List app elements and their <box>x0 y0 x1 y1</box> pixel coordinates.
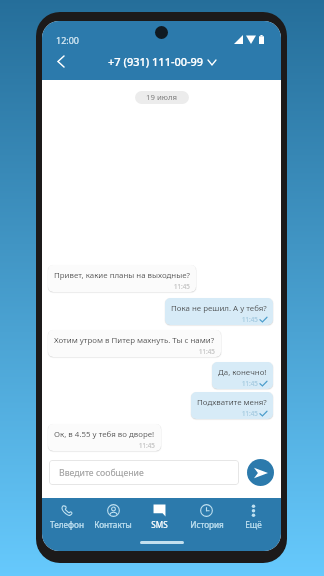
staticText: SMS <box>151 519 168 530</box>
button[interactable]: Send <box>247 459 274 486</box>
staticText: Контакты <box>94 519 132 530</box>
button[interactable]: Ок, в 4.55 у тебя во дворе! <box>48 424 161 451</box>
button[interactable]: 19 июля <box>135 91 189 104</box>
staticText: Ок, в 4.55 у тебя во дворе! <box>54 429 155 440</box>
button[interactable]: SMS <box>136 503 183 531</box>
staticText: Телефон <box>50 519 84 530</box>
button[interactable]: Да, конечно! <box>212 362 273 389</box>
button[interactable]: Хотим утром в Питер махнуть. Ты с нами? <box>48 330 221 357</box>
staticText: Да, конечно! <box>218 367 267 378</box>
button[interactable]: Контакты <box>90 503 136 531</box>
staticText: 19 июля <box>146 92 178 103</box>
staticText: История <box>190 519 224 530</box>
staticText: Хотим утром в Питер махнуть. Ты с нами? <box>54 335 215 346</box>
staticText: 11:45 <box>174 282 190 290</box>
button[interactable]: +7 (931) 111-00-99 <box>108 50 216 72</box>
button[interactable]: История <box>183 503 230 531</box>
staticText: Пока не решил. А у тебя? <box>171 303 267 314</box>
staticText: Привет, какие планы на выходные? <box>54 270 190 281</box>
button[interactable]: Пока не решил. А у тебя? <box>165 298 273 325</box>
button[interactable]: Ещё <box>230 503 277 531</box>
button[interactable]: Back <box>50 50 72 72</box>
button[interactable]: Введите сообщение <box>49 460 239 485</box>
staticText: Ещё <box>245 519 262 530</box>
staticText: 11:45 <box>242 379 258 387</box>
staticText: 11:45 <box>242 409 258 417</box>
button[interactable]: Подхватите меня? <box>191 392 273 419</box>
staticText: 11:45 <box>242 315 258 323</box>
button[interactable]: Телефон <box>44 503 90 531</box>
staticText: 12:00 <box>56 34 80 46</box>
staticText: 11:45 <box>199 347 215 355</box>
staticText: Введите сообщение <box>59 467 144 479</box>
button[interactable]: Привет, какие планы на выходные? <box>48 265 196 292</box>
staticText: Подхватите меня? <box>197 397 267 408</box>
staticText: +7 (931) 111-00-99 <box>108 54 204 69</box>
staticText: 11:45 <box>139 441 155 449</box>
